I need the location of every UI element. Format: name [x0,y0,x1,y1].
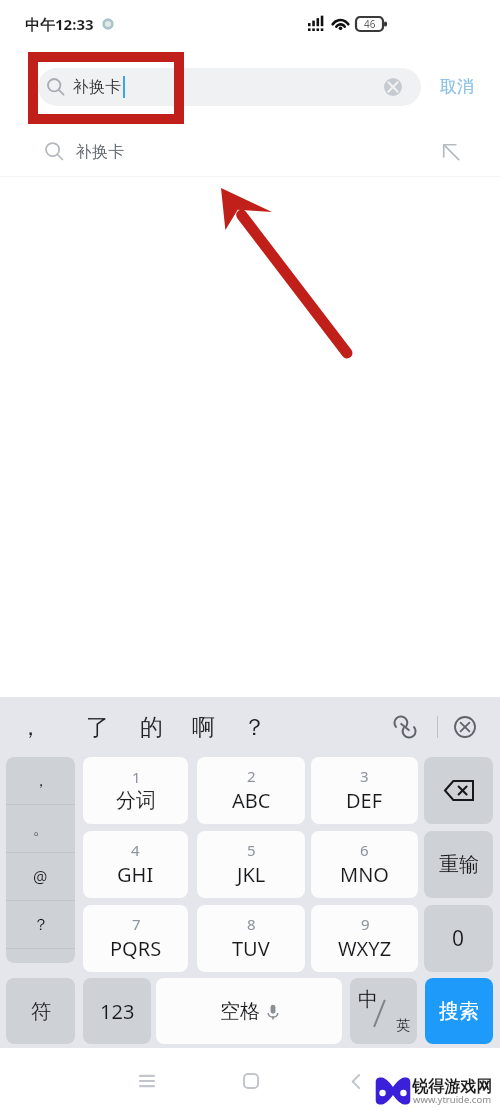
staticText: 补换卡 [76,142,124,162]
button[interactable]: Back [334,1059,378,1103]
staticText: 锐得游戏网 [412,1077,492,1097]
staticText: ？ [243,713,266,742]
staticText: 8 [247,914,256,934]
staticText: 搜索 [439,999,479,1024]
button[interactable]: 6 [311,831,418,898]
button[interactable]: 0 [424,905,493,972]
button[interactable]: 的 [130,707,173,748]
staticText: ， [33,771,49,791]
staticText: 5 [247,840,256,860]
staticText: ， [19,713,42,742]
button[interactable]: 1 [83,757,188,824]
button[interactable]: Hide keyboard [448,710,482,744]
button[interactable]: 4 [83,831,188,898]
button[interactable]: 。 [6,805,75,853]
staticText: 中午12:33 [25,14,94,34]
staticText: JKL [237,861,266,888]
button[interactable]: 符 [6,978,75,1044]
button[interactable]: ？ [6,901,75,949]
button[interactable]: 3 [311,757,418,824]
staticText: TUV [232,935,270,962]
button[interactable]: 8 [197,905,305,972]
staticText: 4 [131,840,140,860]
button[interactable]: Recents [125,1059,169,1103]
button[interactable]: 5 [197,831,305,898]
button[interactable]: Home [229,1059,273,1103]
button[interactable]: @ [6,853,75,901]
staticText: 符 [31,999,51,1024]
staticText: 123 [100,998,135,1025]
staticText: 7 [132,914,141,934]
staticText: 啊 [192,713,215,742]
button[interactable]: 搜索 [425,978,493,1044]
staticText: ABC [232,787,271,814]
button[interactable]: 取消 [421,65,500,108]
staticText: 。 [33,819,49,839]
button[interactable]: 补换卡 [0,127,500,176]
staticText: @ [33,866,48,888]
button[interactable]: Insert suggestion [440,141,462,163]
staticText: 1 [132,767,141,787]
button[interactable]: Switch Chinese English [350,978,417,1044]
staticText: PQRS [110,935,162,962]
button[interactable]: 补换卡 [38,68,421,106]
button[interactable]: ？ [233,707,276,748]
staticText: 重输 [439,852,479,877]
staticText: 了 [86,713,109,742]
button[interactable]: Clipboard [388,710,422,744]
staticText: 2 [247,766,256,786]
staticText: 3 [360,766,369,786]
staticText: 补换卡 [73,77,121,97]
staticText: GHI [117,861,154,888]
staticText: 0 [452,924,465,953]
button[interactable]: 重输 [424,831,493,898]
button[interactable]: 2 [197,757,305,824]
staticText: 分词 [116,788,156,813]
button[interactable]: 9 [311,905,418,972]
staticText: MNO [340,861,389,888]
staticText: 英 [396,1017,410,1035]
staticText: ？ [33,915,49,935]
button[interactable]: 7 [83,905,188,972]
staticText: 6 [360,840,369,860]
staticText: 取消 [440,76,474,97]
staticText: 46 [364,17,376,31]
button[interactable]: ， [6,757,75,805]
button[interactable]: 空格 [156,978,342,1044]
staticText: 9 [361,914,370,934]
staticText: WXYZ [338,935,392,962]
button[interactable]: Backspace [424,757,493,824]
button[interactable]: 啊 [182,707,225,748]
button[interactable]: ， [9,707,52,748]
button[interactable]: Clear text [384,78,402,96]
staticText: 的 [140,713,163,742]
staticText: 中 [358,987,378,1012]
staticText: DEF [346,787,383,814]
button[interactable]: 123 [83,978,151,1044]
button[interactable]: 了 [76,707,119,748]
staticText: 空格 [220,999,260,1024]
staticText: www.ytruide.com [413,1093,492,1106]
